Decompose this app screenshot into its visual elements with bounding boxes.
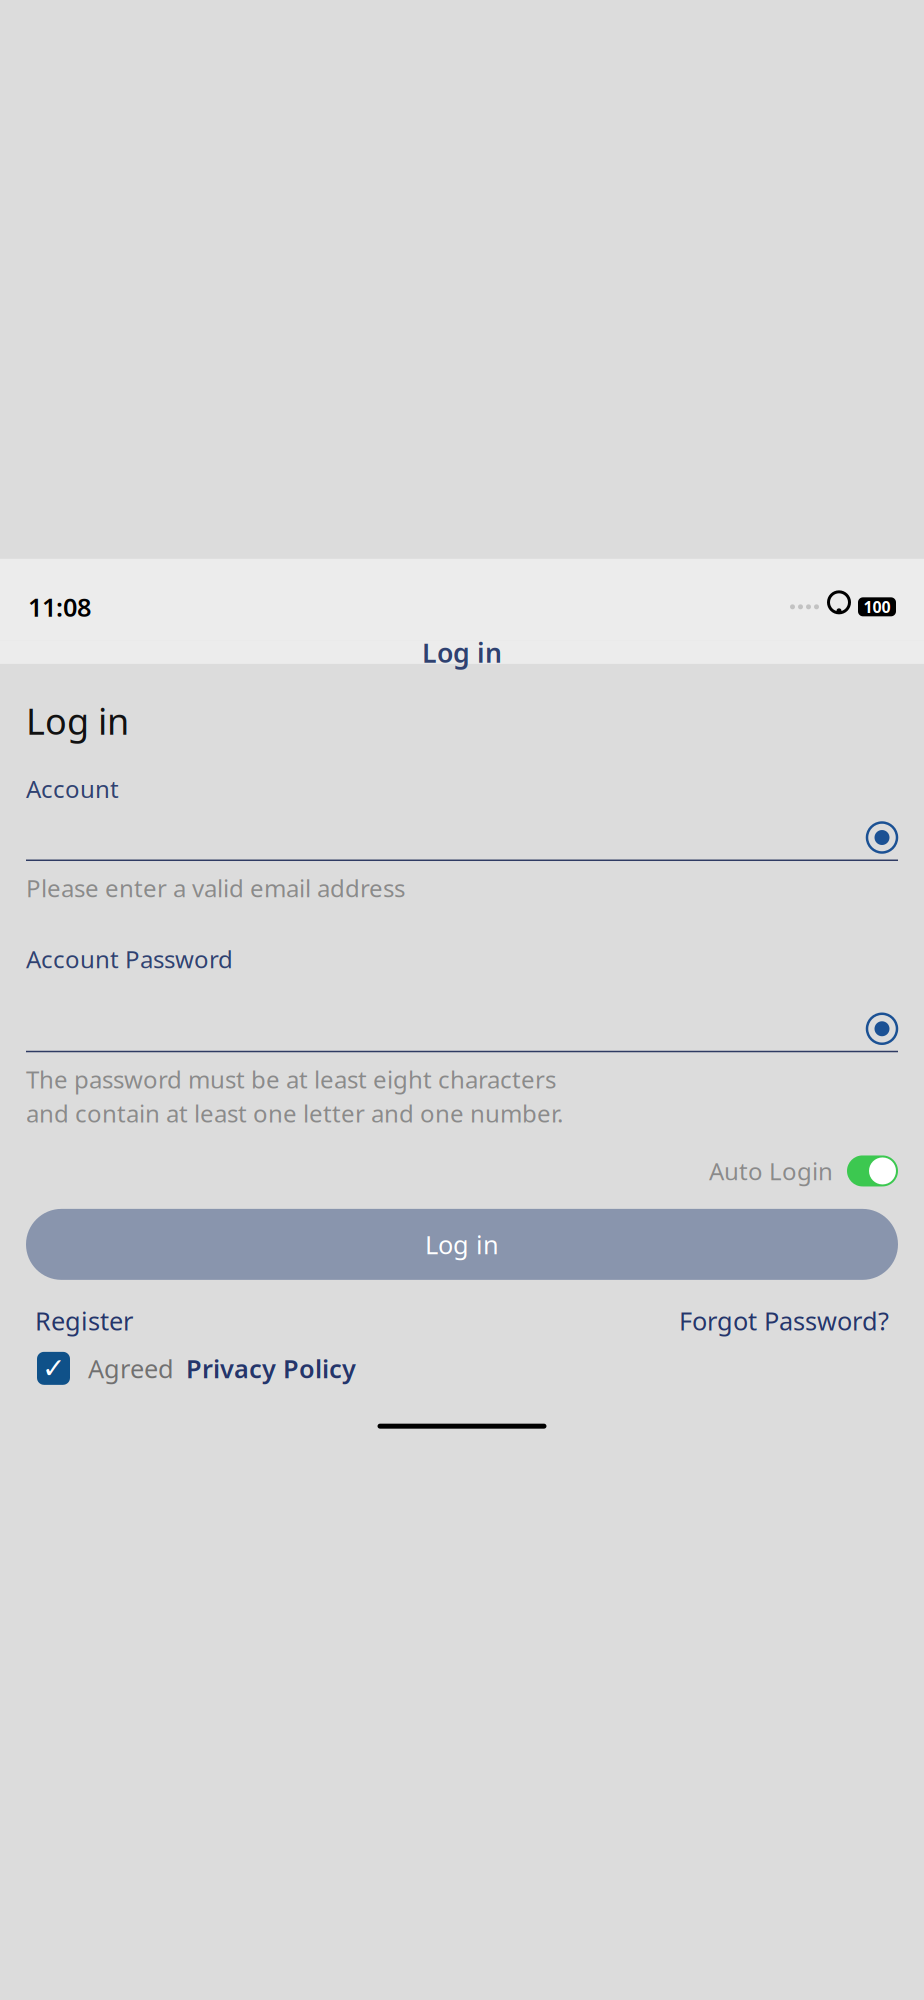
button[interactable]: Privacy Policy — [186, 1351, 356, 1385]
button[interactable]: Register — [35, 1298, 133, 1343]
staticText: 100 — [863, 596, 890, 617]
staticText: Privacy Policy — [186, 1351, 356, 1385]
staticText: and contain at least one letter and one … — [26, 1097, 563, 1129]
button[interactable]: Forgot Password? — [679, 1298, 889, 1343]
staticText: Register — [35, 1304, 133, 1337]
staticText: Account — [26, 773, 119, 804]
button[interactable]: Agreed — [37, 1352, 70, 1385]
staticText: Please enter a valid email address — [26, 872, 405, 904]
staticText: The password must be at least eight char… — [26, 1063, 556, 1095]
button[interactable]: Log in — [26, 1209, 898, 1280]
staticText: Log in — [422, 635, 502, 670]
staticText: Forgot Password? — [679, 1304, 889, 1337]
staticText: 11:08 — [28, 590, 91, 624]
staticText: Log in — [26, 697, 129, 745]
button[interactable]: Show password — [26, 1007, 898, 1052]
button[interactable]: Show account — [26, 815, 898, 861]
staticText: Log in — [425, 1228, 499, 1261]
staticText: Account Password — [26, 943, 233, 975]
button[interactable]: Auto Login — [847, 1155, 898, 1186]
staticText: ✓ — [42, 1352, 65, 1384]
staticText: Auto Login — [709, 1155, 833, 1187]
staticText: Agreed — [88, 1351, 174, 1385]
